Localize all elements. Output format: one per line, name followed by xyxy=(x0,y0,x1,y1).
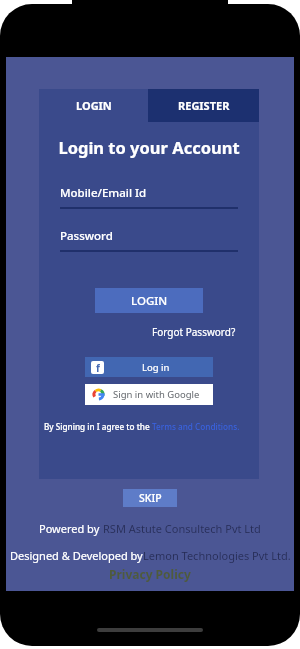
staticText: Designed & Developed by xyxy=(10,548,143,563)
staticText: REGISTER xyxy=(178,98,230,113)
button[interactable]: Sign in with Google xyxy=(85,384,213,405)
staticText: Powered by xyxy=(39,521,103,536)
staticText: By Signing in I agree to the xyxy=(44,421,152,432)
button[interactable]: Terms and Conditions. xyxy=(152,421,240,432)
button[interactable]: Forgot Password? xyxy=(39,325,236,339)
staticText: Password xyxy=(60,228,113,244)
staticText: Sign in with Google xyxy=(113,388,200,401)
staticText: Login to your Account xyxy=(58,136,240,158)
staticText: Log in xyxy=(142,361,170,374)
staticText: LOGIN xyxy=(131,293,168,309)
staticText: LOGIN xyxy=(76,98,112,113)
button[interactable]: f xyxy=(85,357,213,377)
staticText: f xyxy=(96,361,100,374)
staticText: Forgot Password? xyxy=(152,325,236,339)
staticText: Mobile/Email Id xyxy=(60,185,147,201)
staticText: SKIP xyxy=(139,491,162,505)
staticText: RSM Astute Consultech Pvt Ltd xyxy=(103,521,261,536)
staticText: Lemon Technologies Pvt Ltd. xyxy=(143,548,291,563)
button[interactable]: LOGIN xyxy=(39,89,148,122)
button[interactable]: LOGIN xyxy=(95,288,203,313)
button[interactable]: SKIP xyxy=(123,489,177,507)
button[interactable]: REGISTER xyxy=(148,89,259,122)
button[interactable]: Privacy Policy xyxy=(109,566,191,582)
